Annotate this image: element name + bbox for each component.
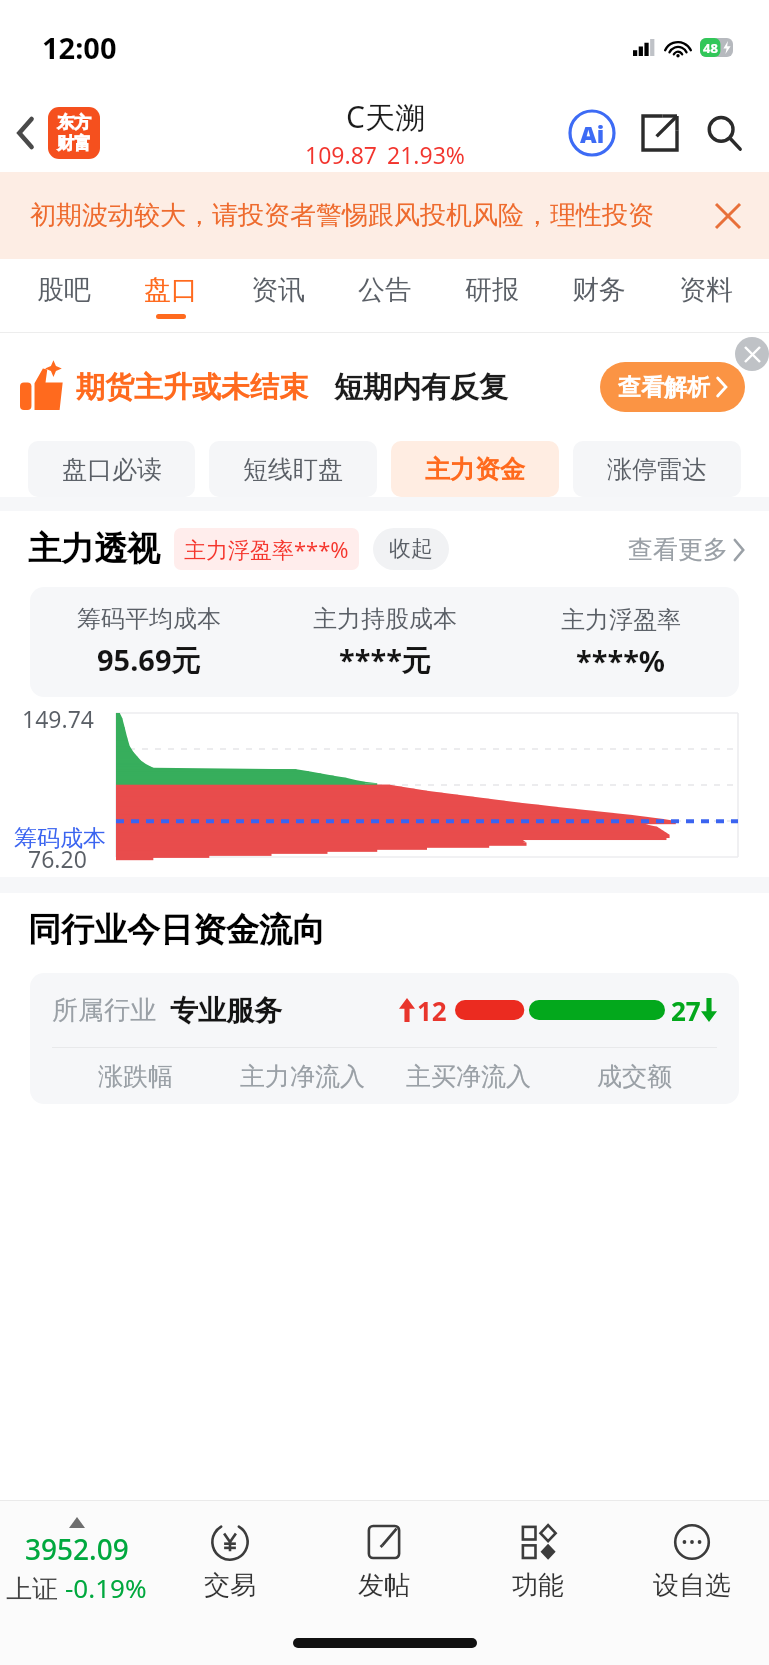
- button[interactable]: 收起: [389, 528, 433, 570]
- button[interactable]: AI 助手: [565, 106, 619, 160]
- button[interactable]: 主力持股成本: [267, 587, 503, 697]
- button[interactable]: 涨停雷达: [573, 441, 741, 497]
- button[interactable]: 初期波动较大，请投资者警惕跟风投机风险，理性投资: [0, 172, 769, 259]
- staticText: ****%: [576, 641, 666, 680]
- staticText: 东方: [57, 112, 91, 133]
- staticText: 功能: [512, 1569, 564, 1602]
- staticText: 收起: [389, 535, 433, 563]
- staticText: 股吧: [37, 273, 91, 307]
- staticText: 短线盯盘: [243, 454, 343, 485]
- button[interactable]: 短线盯盘: [209, 441, 377, 497]
- staticText: 27: [671, 993, 701, 1028]
- staticText: 涨停雷达: [607, 454, 707, 485]
- button[interactable]: 查看解析: [618, 362, 727, 412]
- button[interactable]: 筹码平均成本: [30, 587, 267, 697]
- button[interactable]: Share: [633, 106, 687, 160]
- button[interactable]: 3952.09: [0, 1501, 153, 1621]
- button[interactable]: 主力浮盈率: [503, 587, 739, 697]
- staticText: 短期内有反复: [334, 369, 508, 406]
- staticText: 财富: [57, 133, 91, 154]
- button[interactable]: 关闭: [701, 189, 755, 243]
- staticText: 48: [703, 39, 718, 57]
- staticText: 设自选: [653, 1569, 731, 1602]
- staticText: C天溯: [346, 96, 425, 137]
- button[interactable]: 关闭广告: [735, 337, 769, 371]
- button[interactable]: 发帖: [307, 1501, 461, 1621]
- staticText: 主买净流入: [406, 1061, 531, 1092]
- staticText: 109.87: [305, 139, 377, 170]
- staticText: 主力浮盈率: [561, 605, 681, 635]
- staticText: 财务: [572, 273, 626, 307]
- button[interactable]: 财务: [545, 259, 652, 332]
- staticText: 同行业今日资金流向: [28, 909, 325, 951]
- staticText: 交易: [204, 1569, 256, 1602]
- staticText: 所属行业: [52, 994, 156, 1027]
- staticText: 公告: [358, 273, 412, 307]
- staticText: 初期波动较大，请投资者警惕跟风投机风险，理性投资: [30, 199, 654, 232]
- button[interactable]: 资料: [652, 259, 759, 332]
- staticText: 查看更多: [628, 534, 728, 565]
- button[interactable]: Back: [0, 107, 52, 159]
- staticText: ****元: [339, 640, 431, 680]
- button[interactable]: 主力资金: [391, 441, 559, 497]
- staticText: 149.74: [22, 703, 94, 734]
- button[interactable]: 股吧: [10, 259, 117, 332]
- staticText: 95.69元: [97, 640, 201, 680]
- button[interactable]: 功能: [461, 1501, 615, 1621]
- button[interactable]: 资讯: [224, 259, 331, 332]
- button[interactable]: 期货主升或未结束: [20, 333, 745, 441]
- staticText: -0.19%: [65, 1570, 147, 1605]
- staticText: 主力净流入: [240, 1061, 365, 1092]
- staticText: 12: [417, 993, 447, 1028]
- staticText: 筹码平均成本: [77, 604, 221, 634]
- button[interactable]: 盘口必读: [28, 441, 195, 497]
- staticText: 发帖: [358, 1569, 410, 1602]
- staticText: 主力持股成本: [313, 604, 457, 634]
- button[interactable]: 查看更多: [628, 534, 745, 565]
- button[interactable]: 设自选: [615, 1501, 769, 1621]
- button[interactable]: 公告: [331, 259, 438, 332]
- staticText: 主力资金: [425, 454, 525, 485]
- button[interactable]: Search: [697, 106, 751, 160]
- staticText: 3952.09: [25, 1530, 129, 1568]
- staticText: 盘口必读: [62, 454, 162, 485]
- staticText: 盘口: [144, 273, 198, 307]
- staticText: 主力浮盈率***%: [184, 534, 349, 564]
- staticText: 涨跌幅: [98, 1061, 173, 1092]
- staticText: 12:00: [42, 28, 117, 67]
- staticText: 查看解析: [618, 373, 710, 402]
- staticText: 研报: [465, 273, 519, 307]
- staticText: 期货主升或未结束: [76, 369, 308, 406]
- staticText: 资讯: [251, 273, 305, 307]
- button[interactable]: 东方财富: [48, 107, 100, 159]
- button[interactable]: 研报: [438, 259, 545, 332]
- button[interactable]: 主力浮盈率***%: [184, 528, 349, 570]
- staticText: 主力透视: [28, 528, 160, 570]
- staticText: 21.93%: [387, 139, 465, 170]
- staticText: 76.20: [28, 843, 87, 874]
- staticText: 成交额: [597, 1061, 672, 1092]
- staticText: 资料: [679, 273, 733, 307]
- button[interactable]: 所属行业: [52, 973, 717, 1047]
- staticText: 上证: [6, 1570, 65, 1606]
- button[interactable]: 交易: [153, 1501, 307, 1621]
- button[interactable]: 盘口: [117, 259, 224, 332]
- staticText: 筹码成本: [14, 824, 106, 853]
- staticText: 专业服务: [170, 993, 282, 1028]
- staticText: Ai: [580, 118, 605, 149]
